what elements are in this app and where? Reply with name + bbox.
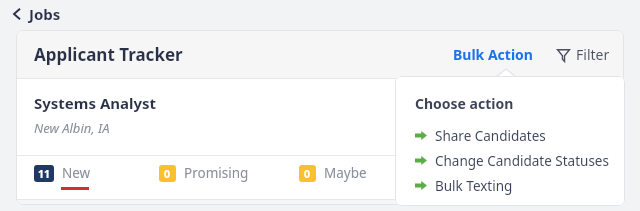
staticText: Bulk Texting [435, 177, 513, 195]
staticText: Applicant Tracker [34, 43, 183, 66]
staticText: Share Candidates [435, 127, 546, 145]
staticText: New Albin, IA [34, 119, 110, 137]
button[interactable]: 0 [299, 164, 367, 182]
staticText: Offer [442, 164, 476, 182]
staticText: 0 [304, 167, 311, 181]
staticText: 0 [164, 167, 171, 181]
staticText: Promising [184, 164, 249, 182]
button[interactable]: 11 [34, 164, 91, 190]
staticText: Filter [576, 45, 610, 64]
staticText: 11 [38, 167, 51, 181]
staticText: New [62, 164, 91, 182]
button[interactable]: Bulk Action [447, 39, 539, 70]
staticText: Jobs [29, 4, 61, 24]
button[interactable]: 0 [159, 164, 249, 182]
button[interactable]: Bulk Texting [415, 173, 625, 198]
staticText: Maybe [324, 164, 367, 182]
button[interactable]: Share Candidates [415, 123, 625, 148]
button[interactable]: Filter [553, 39, 614, 70]
button[interactable]: Jobs [8, 1, 65, 27]
staticText: Bulk Action [453, 45, 533, 64]
staticText: Change Candidate Statuses [435, 152, 609, 170]
staticText: Choose action [415, 94, 514, 113]
button[interactable]: 0 [417, 164, 476, 182]
staticText: Systems Analyst [34, 93, 157, 113]
button[interactable]: Change Candidate Statuses [415, 148, 625, 173]
